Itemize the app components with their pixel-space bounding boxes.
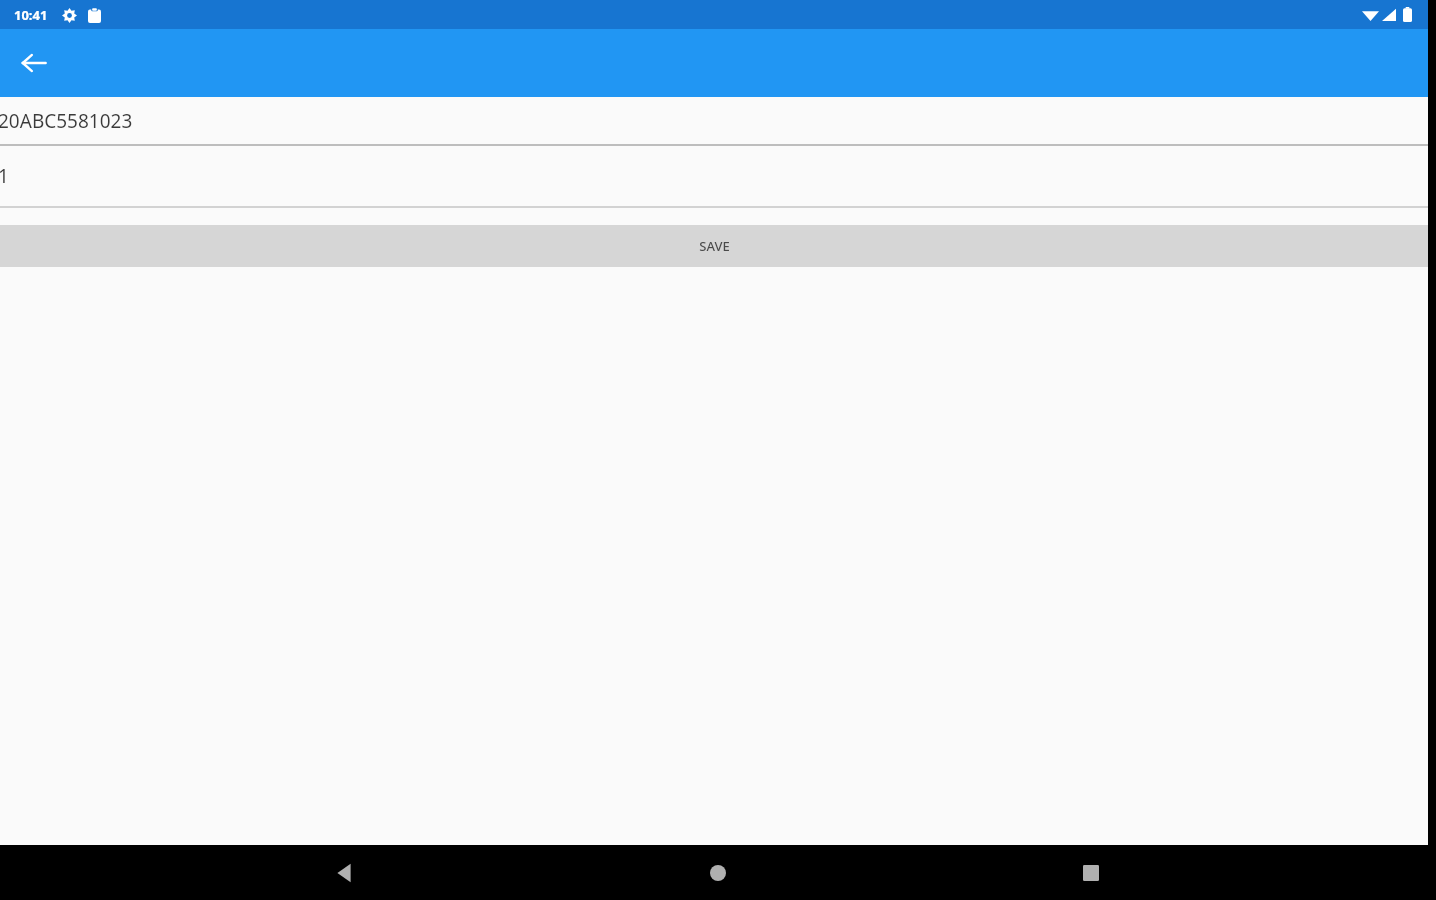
button[interactable]: Recent apps: [1063, 845, 1119, 900]
staticText: 1: [0, 163, 9, 189]
button[interactable]: 20ABC5581023: [0, 97, 1428, 144]
staticText: 10:41: [14, 6, 48, 24]
button[interactable]: Home: [690, 845, 746, 900]
staticText: 20ABC5581023: [0, 108, 133, 134]
button[interactable]: Back: [317, 845, 373, 900]
staticText: SAVE: [699, 237, 730, 255]
button[interactable]: Navigate up: [10, 39, 58, 87]
button[interactable]: SAVE: [0, 225, 1428, 267]
